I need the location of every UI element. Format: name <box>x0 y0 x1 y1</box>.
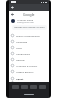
button[interactable]: General <box>9 56 49 62</box>
button[interactable]: Account name <box>9 17 49 24</box>
staticText: Google <box>23 12 35 17</box>
staticText: Language <box>16 40 28 43</box>
button[interactable]: Manage your Google Account <box>12 25 47 30</box>
staticText: name@gmail.com <box>17 21 34 24</box>
button[interactable]: Language <box>9 38 49 44</box>
staticText: Notifications <box>16 52 31 55</box>
staticText: Voice <box>16 46 22 49</box>
button[interactable]: About <box>9 75 49 81</box>
staticText: General <box>16 58 25 61</box>
staticText: Hidden general <box>16 70 34 73</box>
button[interactable]: Privacy policy <box>9 81 49 82</box>
button[interactable]: Hidden general <box>9 68 49 74</box>
staticText: Manage your Google Account <box>14 26 45 29</box>
staticText: Accounts & privacy <box>16 64 38 67</box>
button[interactable]: Accounts & privacy <box>9 62 49 68</box>
button[interactable]: Voice <box>9 44 49 50</box>
button[interactable]: Back <box>10 5 15 10</box>
button[interactable]: Notifications <box>9 50 49 56</box>
staticText: About <box>16 77 24 80</box>
staticText: Search customisation <box>16 34 41 37</box>
button[interactable]: Navigate up <box>10 12 14 16</box>
staticText: Account name <box>17 18 34 21</box>
button[interactable]: Search customisation <box>9 32 49 38</box>
